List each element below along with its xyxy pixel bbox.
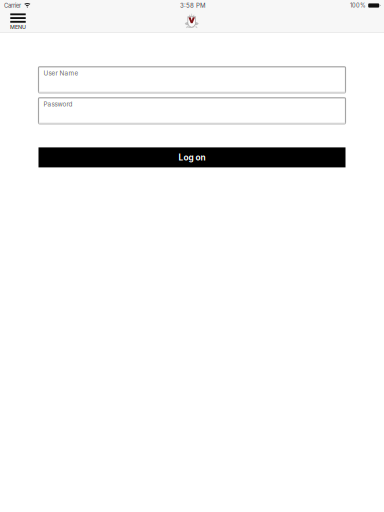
staticText: Password <box>43 100 72 108</box>
button[interactable]: User Name <box>38 67 345 93</box>
staticText: 3:58 PM <box>180 2 206 9</box>
button[interactable]: Menu <box>7 12 29 31</box>
staticText: MENU <box>10 24 26 30</box>
button[interactable]: Password <box>38 98 345 124</box>
button[interactable]: Log on <box>38 147 345 167</box>
staticText: Log on <box>178 152 205 162</box>
staticText: 100% <box>350 2 366 9</box>
staticText: Carrier <box>4 2 21 9</box>
staticText: User Name <box>43 69 78 77</box>
